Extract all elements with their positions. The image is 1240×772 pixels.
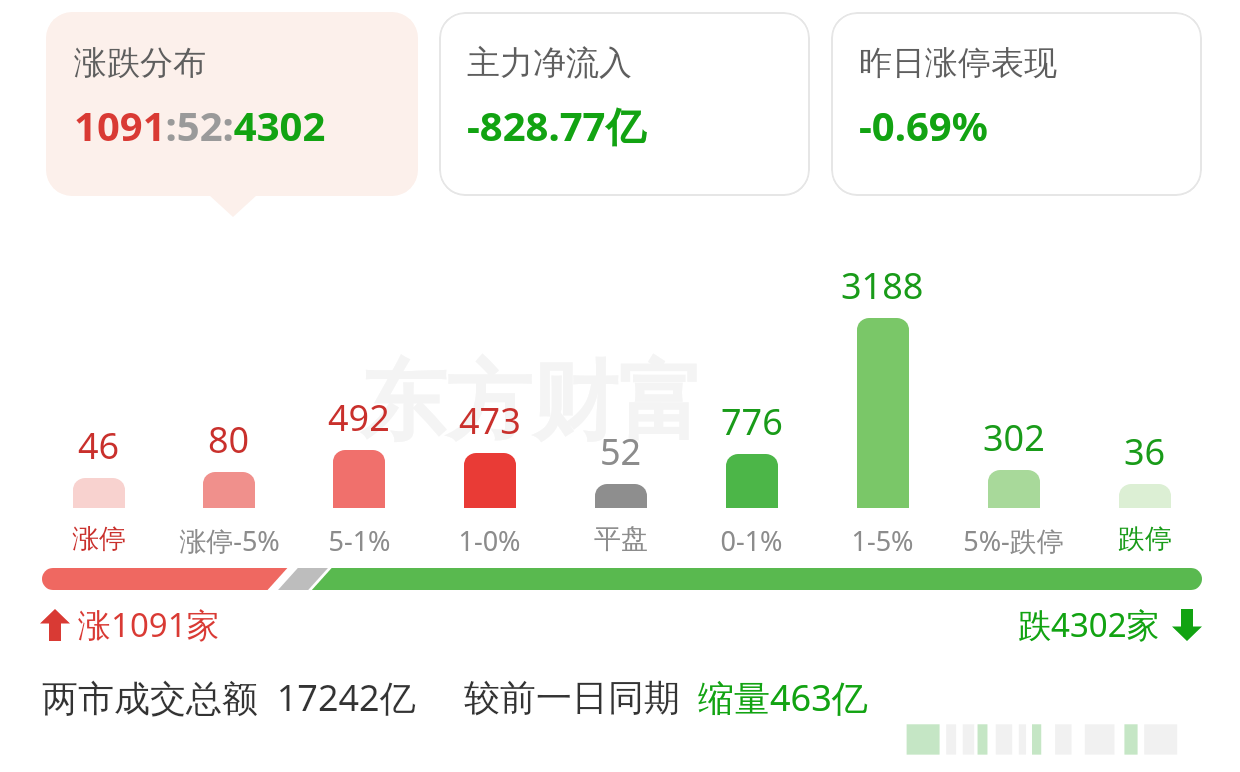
- staticText: 跌4302家: [1018, 602, 1160, 647]
- staticText: 较前一日同期: [464, 675, 680, 720]
- other: Declining: [1172, 609, 1202, 641]
- staticText: 涨跌分布: [74, 42, 206, 84]
- staticText: 东方财富: [360, 348, 704, 456]
- staticText: 涨停-5%: [179, 522, 280, 559]
- staticText: 492: [328, 393, 390, 442]
- staticText: 跌停: [1118, 522, 1172, 556]
- staticText: 1-0%: [458, 522, 521, 559]
- staticText: 80: [208, 415, 250, 464]
- staticText: 主力净流入: [467, 42, 632, 84]
- staticText: 5-1%: [328, 522, 391, 559]
- staticText: 302: [983, 413, 1045, 462]
- staticText: 46: [78, 421, 120, 470]
- staticText: 昨日涨停表现: [859, 42, 1057, 84]
- staticText: 3188: [841, 261, 924, 310]
- staticText: 平盘: [594, 522, 648, 556]
- staticText: 0-1%: [720, 522, 783, 559]
- staticText: -828.77亿: [467, 98, 646, 153]
- staticText: 52: [600, 427, 642, 476]
- staticText: 1091:52:4302: [74, 98, 326, 152]
- staticText: 涨停: [72, 522, 126, 556]
- staticText: 776: [721, 397, 783, 446]
- staticText: -0.69%: [859, 98, 988, 152]
- staticText: 473: [459, 396, 521, 445]
- staticText: 5%-跌停: [963, 522, 1064, 559]
- button[interactable]: 涨跌分布: [46, 12, 418, 196]
- button[interactable]: 昨日涨停表现: [831, 12, 1202, 196]
- staticText: 36: [1124, 427, 1166, 476]
- staticText: 两市成交总额 17242亿: [42, 673, 416, 722]
- staticText: 缩量463亿: [698, 673, 868, 722]
- staticText: 1-5%: [851, 522, 914, 559]
- button[interactable]: 主力净流入: [439, 12, 810, 196]
- staticText: 涨1091家: [78, 602, 220, 647]
- other: Advancing: [40, 609, 70, 641]
